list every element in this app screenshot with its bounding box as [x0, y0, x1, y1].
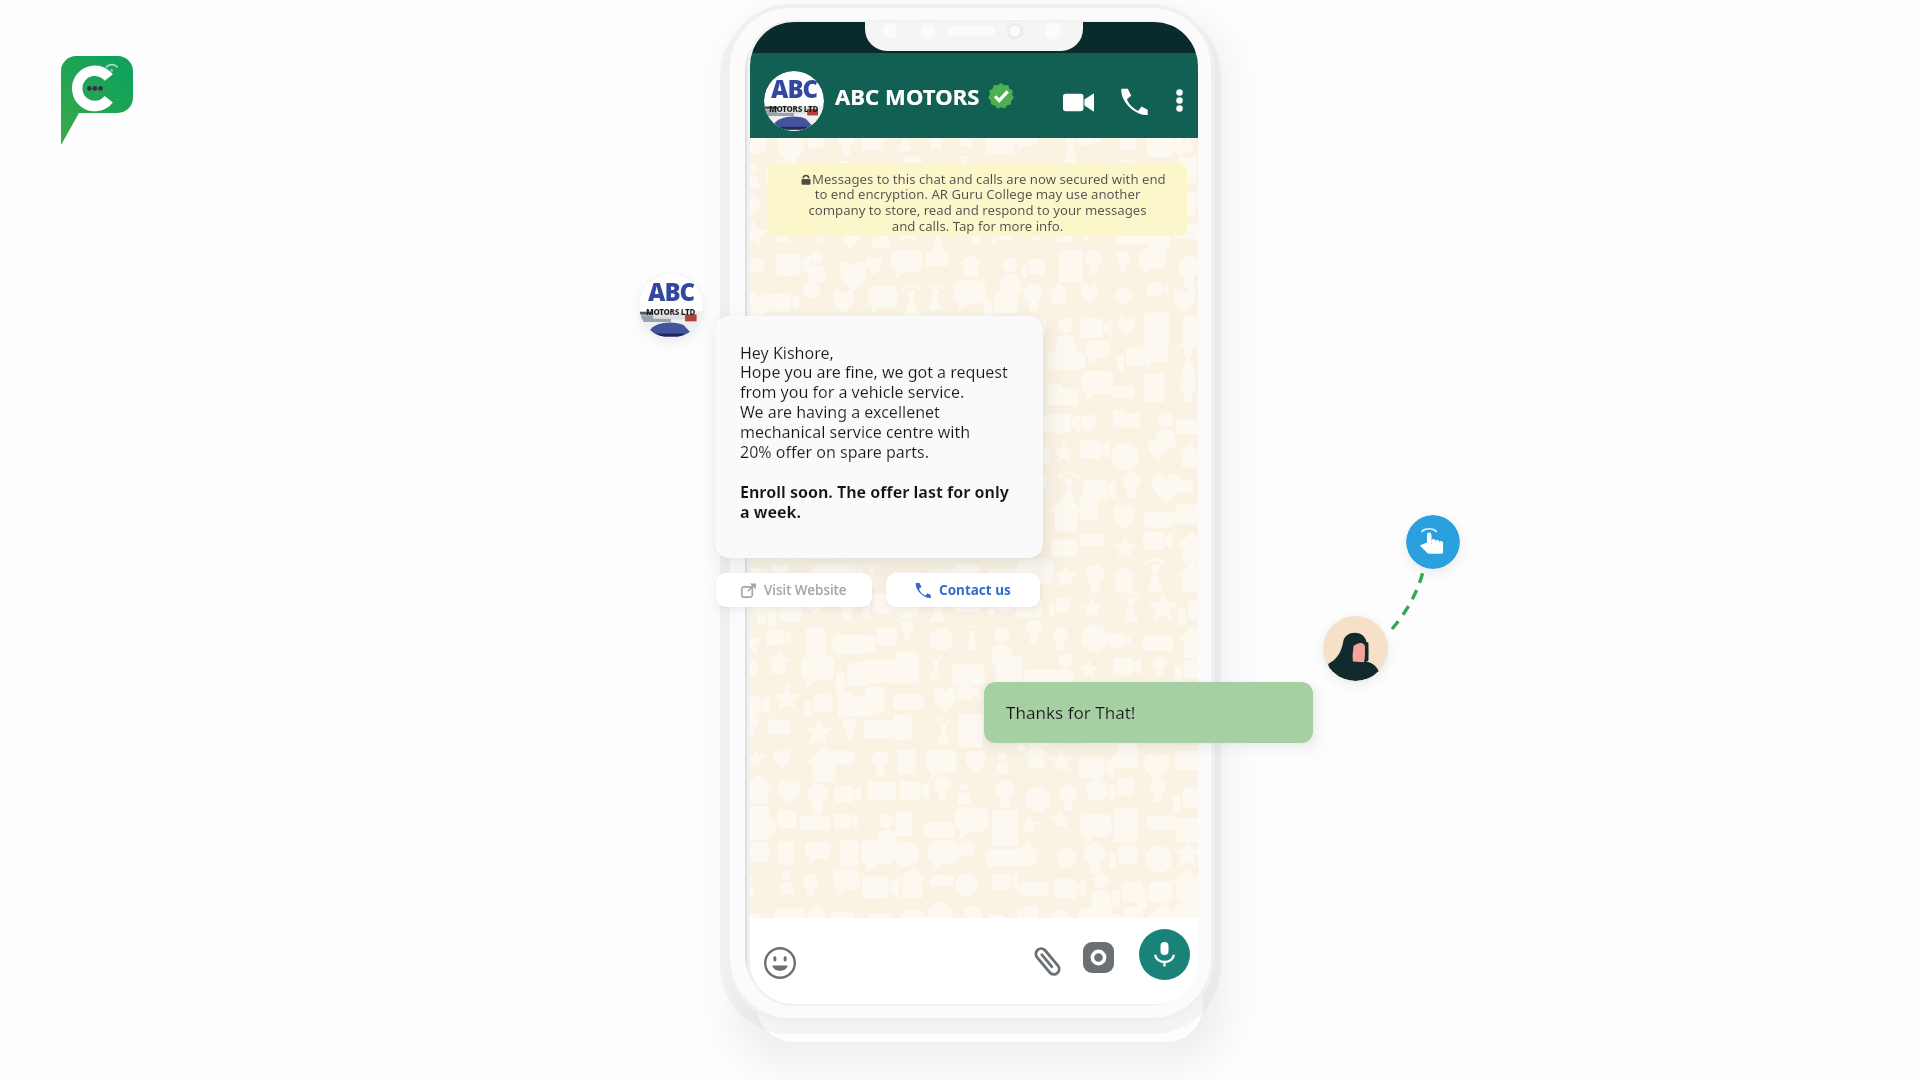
button[interactable]: Tap here — [1406, 515, 1460, 569]
staticText: Messages to this chat and calls are now … — [768, 170, 1187, 235]
button[interactable]: Thanks for That! — [984, 682, 1313, 743]
button[interactable]: Voice call — [1116, 83, 1152, 119]
button[interactable]: Profile photo — [764, 71, 824, 131]
button[interactable]: Attach file — [1026, 940, 1068, 982]
staticText: ABC MOTORS — [835, 81, 980, 111]
staticText: MOTORS LTD — [646, 306, 696, 317]
button[interactable]: App logo — [61, 56, 133, 145]
staticText: Contact us — [939, 581, 1011, 599]
button[interactable]: Emoji — [759, 942, 801, 984]
staticText: Visit Website — [764, 581, 847, 599]
button[interactable]: Visit Website — [716, 573, 872, 607]
button[interactable]: Hey Kishore, Hope you are fine, we got a… — [715, 316, 1043, 558]
button[interactable]: Camera — [1083, 942, 1114, 973]
button[interactable]: More options — [1164, 85, 1194, 115]
button[interactable]: Messages to this chat and calls are now … — [768, 163, 1187, 236]
staticText: Hey Kishore, Hope you are fine, we got a… — [740, 342, 1030, 523]
staticText: ABC — [648, 275, 695, 308]
button[interactable]: Video call — [1059, 83, 1097, 121]
staticText: ABC — [771, 72, 818, 105]
staticText: MOTORS LTD — [769, 103, 819, 114]
staticText: Thanks for That! — [1006, 701, 1136, 724]
button[interactable]: Contact us — [886, 573, 1040, 607]
button[interactable]: Record voice message — [1139, 929, 1190, 980]
